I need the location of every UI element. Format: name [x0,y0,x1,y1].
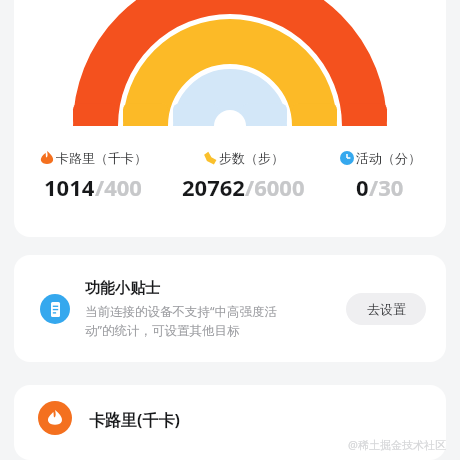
staticText: 功能小贴士 [85,279,160,298]
staticText: /30 [369,172,404,202]
staticText: 20762 [182,172,245,202]
staticText: 卡路里(千卡) [89,409,180,431]
staticText: 1014 [44,172,95,202]
staticText: /400 [95,172,142,202]
button[interactable]: 活动（分） [316,150,444,202]
button[interactable]: 卡路里（千卡） [16,150,170,202]
button[interactable]: 步数（步） [170,150,316,202]
staticText: 活动（分） [356,150,421,166]
staticText: 0 [356,172,369,202]
staticText: 步数（步） [219,150,284,166]
staticText: @稀土掘金技术社区 [348,437,446,452]
button[interactable]: 去设置 [346,293,426,325]
button[interactable]: 卡路里(千卡) [14,385,446,460]
staticText: 卡路里（千卡） [56,150,147,166]
button[interactable] [14,0,446,237]
staticText: 去设置 [367,301,406,317]
staticText: /6000 [245,172,305,202]
button[interactable]: 功能小贴士 [14,255,446,362]
staticText: 当前连接的设备不支持“中高强度活 动”的统计，可设置其他目标 [85,303,277,339]
